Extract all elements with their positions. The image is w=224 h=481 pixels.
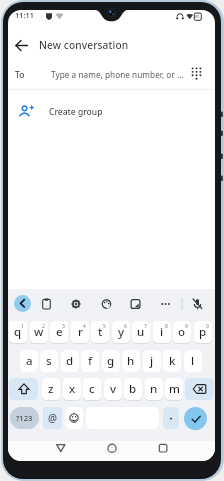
button[interactable] <box>14 295 31 312</box>
staticText: 85 <box>195 14 200 19</box>
button[interactable]: m <box>165 378 183 400</box>
button[interactable] <box>148 441 178 461</box>
button[interactable] <box>97 441 127 461</box>
staticText: Type a name, phone number, or ... <box>51 69 184 80</box>
staticText: m <box>169 381 180 397</box>
button[interactable]: To <box>8 59 215 90</box>
staticText: g <box>107 353 115 369</box>
staticText: u <box>137 324 145 340</box>
button[interactable]: d <box>61 350 79 372</box>
staticText: To <box>15 69 25 81</box>
staticText: 7 <box>144 323 147 330</box>
button[interactable]: k <box>163 350 181 372</box>
staticText: k <box>169 353 176 369</box>
button[interactable] <box>185 378 214 400</box>
staticText: q <box>14 324 22 340</box>
staticText: 8 <box>165 323 168 330</box>
staticText: h <box>127 353 135 369</box>
button[interactable]: r <box>71 321 89 343</box>
button[interactable]: t <box>91 321 109 343</box>
staticText: New conversation <box>39 38 129 52</box>
staticText: f <box>88 353 93 369</box>
button[interactable]: c <box>83 378 101 400</box>
staticText: 0 <box>206 323 209 330</box>
button[interactable] <box>11 34 33 56</box>
staticText: d <box>66 353 74 369</box>
staticText: 5 <box>103 323 106 330</box>
button[interactable]: s <box>40 350 58 372</box>
button[interactable] <box>9 378 38 400</box>
button[interactable]: g <box>102 350 120 372</box>
staticText: c <box>89 381 95 397</box>
staticText: ?123 <box>16 413 33 423</box>
staticText: n <box>150 381 158 397</box>
button[interactable] <box>46 441 76 461</box>
button[interactable]: z <box>42 378 60 400</box>
staticText: p <box>199 324 207 340</box>
button[interactable]: w <box>30 321 48 343</box>
button[interactable]: q <box>9 321 27 343</box>
staticText: r <box>78 324 83 340</box>
button[interactable]: p <box>194 321 212 343</box>
button[interactable]: j <box>143 350 161 372</box>
staticText: w <box>34 324 44 340</box>
staticText: @ <box>48 411 57 425</box>
staticText: t <box>98 324 103 340</box>
button[interactable] <box>65 407 83 429</box>
staticText: z <box>48 381 54 397</box>
button[interactable] <box>163 407 179 429</box>
button[interactable]: x <box>63 378 81 400</box>
button[interactable]: b <box>124 378 142 400</box>
button[interactable] <box>184 407 207 430</box>
staticText: x <box>69 381 76 397</box>
button[interactable]: v <box>104 378 122 400</box>
staticText: j <box>150 353 154 369</box>
button[interactable]: a <box>20 350 38 372</box>
staticText: l <box>191 353 195 369</box>
button[interactable]: y <box>112 321 130 343</box>
button[interactable]: h <box>122 350 140 372</box>
button[interactable]: u <box>132 321 150 343</box>
staticText: 1 <box>21 323 24 330</box>
button[interactable]: @ <box>43 407 62 429</box>
button[interactable]: n <box>145 378 163 400</box>
staticText: Create group <box>49 106 103 118</box>
staticText: e <box>56 324 63 340</box>
staticText: v <box>110 381 117 397</box>
staticText: 9 <box>185 323 188 330</box>
button[interactable]: f <box>81 350 99 372</box>
button[interactable]: ?123 <box>10 407 39 429</box>
staticText: o <box>178 324 186 340</box>
button[interactable]: i <box>153 321 171 343</box>
staticText: y <box>118 324 125 340</box>
staticText: 2 <box>42 323 45 330</box>
staticText: 3 <box>62 323 65 330</box>
staticText: 6 <box>124 323 127 330</box>
staticText: b <box>129 381 137 397</box>
staticText: 4 <box>83 323 86 330</box>
staticText: i <box>160 324 164 340</box>
button[interactable]: l <box>184 350 202 372</box>
button[interactable]: e <box>50 321 68 343</box>
staticText: 11:11 <box>15 11 34 21</box>
button[interactable]: o <box>173 321 191 343</box>
staticText: s <box>46 353 52 369</box>
staticText: a <box>26 353 33 369</box>
button[interactable]: Create group <box>8 95 215 129</box>
